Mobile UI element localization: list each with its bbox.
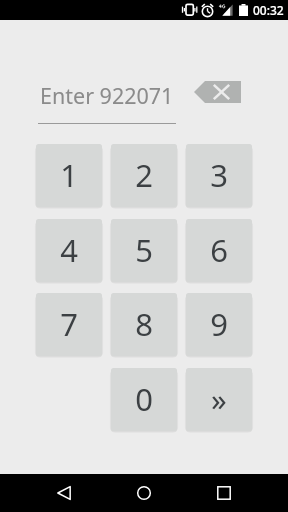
staticText: 3 (210, 154, 228, 196)
button[interactable]: 3 (186, 144, 252, 207)
button[interactable]: 0 (111, 368, 177, 431)
staticText: 00:32 (253, 2, 284, 18)
button[interactable]: 5 (111, 219, 177, 282)
staticText: 9 (210, 303, 228, 345)
staticText: 0 (135, 378, 153, 420)
staticText: 7 (60, 303, 78, 345)
button[interactable]: Backspace (194, 81, 241, 103)
button[interactable]: Back (40, 474, 88, 512)
button[interactable]: 1 (36, 144, 102, 207)
button[interactable]: 6 (186, 219, 252, 282)
button[interactable]: 9 (186, 293, 252, 356)
button[interactable]: » (186, 368, 252, 431)
button[interactable]: 2 (111, 144, 177, 207)
staticText: 4 (60, 229, 78, 271)
button[interactable]: 4 (36, 219, 102, 282)
button[interactable]: Home (120, 474, 168, 512)
staticText: » (211, 378, 227, 420)
button[interactable]: Recents (200, 474, 248, 512)
button[interactable]: 7 (36, 293, 102, 356)
staticText: Enter 922071 (40, 81, 174, 110)
staticText: 6 (210, 229, 228, 271)
staticText: 2 (135, 154, 153, 196)
staticText: 5 (135, 229, 153, 271)
button[interactable]: 8 (111, 293, 177, 356)
staticText: 1 (60, 154, 78, 196)
staticText: 8 (135, 303, 153, 345)
